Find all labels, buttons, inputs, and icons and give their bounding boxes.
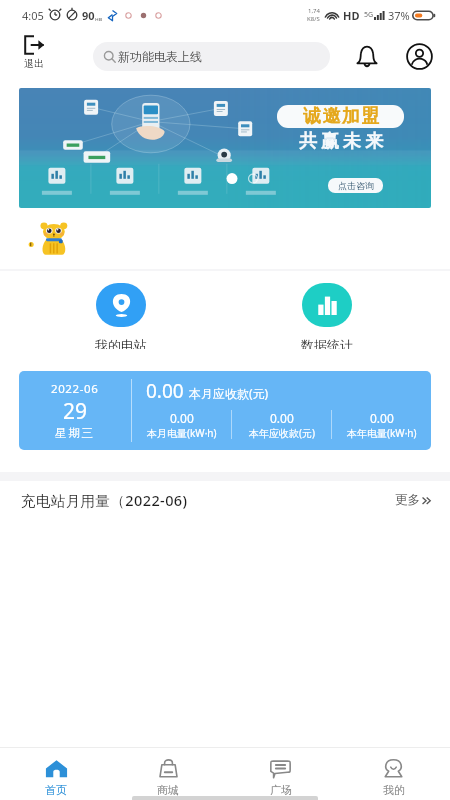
staticText: 我的电站 [95,337,147,349]
staticText: HD [343,8,360,23]
staticText: 0.00 [146,378,184,404]
staticText: 29 [63,397,88,426]
staticText: 37% [388,8,410,23]
staticText: 更多 [395,492,420,508]
staticText: 数据统计 [301,337,353,349]
button[interactable]: 首页 [0,748,112,800]
staticText: 商城 [157,783,179,797]
button[interactable]: 我的账户 [401,38,437,74]
button[interactable]: 点击咨询 [328,178,383,193]
staticText: 点击咨询 [338,180,374,191]
button[interactable]: 退出 [17,34,51,70]
staticText: K8/S [307,15,320,23]
staticText: 2022-06 [51,381,99,397]
staticText: 本月电量(kW·h) [147,426,217,440]
button[interactable]: 广场 [224,748,337,800]
staticText: 充电站月用量（2022-06) [21,490,188,510]
button[interactable]: 更多 [395,492,431,508]
staticText: 星期三 [55,426,95,440]
staticText: 本年应收款(元) [249,426,315,440]
staticText: 本年电量(kW·h) [347,426,417,440]
staticText: 0.00 [170,410,194,426]
button[interactable]: 吉祥物 [27,221,69,257]
button[interactable]: 我的 [337,748,450,800]
button[interactable]: 我的电站 [21,283,220,349]
button[interactable]: 商城 [112,748,224,800]
staticText: 0.00 [370,410,394,426]
staticText: 共赢未来 [297,130,385,153]
staticText: 首页 [45,783,67,797]
staticText: 广场 [270,783,292,797]
staticText: 诚邀加盟 [302,105,380,128]
staticText: 我的 [383,783,405,797]
staticText: 1,74 [308,7,320,15]
button[interactable]: 数据统计 [220,283,434,349]
staticText: 5G [364,10,374,20]
staticText: 退出 [24,57,44,70]
button[interactable]: 新功能电表上线 [93,42,330,71]
button[interactable]: 通知 [349,38,385,74]
staticText: 4:05 [22,8,44,23]
staticText: 新功能电表上线 [118,49,202,64]
staticText: нв [95,15,103,23]
staticText: 0.00 [270,410,294,426]
staticText: 本月应收款(元) [189,385,269,401]
staticText: 90 [82,8,95,23]
